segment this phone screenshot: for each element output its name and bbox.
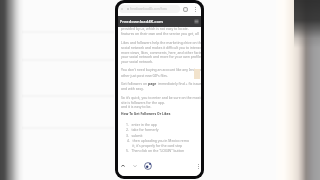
staticText: 4. then uploading you in Mexico remo bbox=[127, 138, 189, 143]
staticText: and it is easy to be. bbox=[121, 104, 152, 109]
staticText: You don't need buying an account like an… bbox=[121, 67, 201, 72]
button[interactable]: Freedownload4K.com bbox=[120, 16, 199, 27]
staticText: Freedownload4K.com bbox=[120, 19, 163, 24]
staticText: features on their own and the service yo… bbox=[121, 31, 199, 36]
staticText: 3. submit bbox=[126, 133, 143, 138]
staticText: provided by us, which is not easy to loc… bbox=[121, 26, 189, 31]
staticText: immediately find + fix issues bbox=[157, 81, 201, 86]
button[interactable]: Menu bbox=[194, 19, 199, 24]
button[interactable]: Back bbox=[120, 163, 126, 169]
button[interactable]: freedownload4k.com/how bbox=[119, 5, 180, 13]
button[interactable]: Forward bbox=[132, 163, 138, 169]
staticText: your social network. bbox=[121, 59, 154, 64]
staticText: 2. take for formerly bbox=[126, 127, 159, 132]
staticText: site is followers for the app. bbox=[121, 100, 165, 105]
staticText: your social network and more for your ow… bbox=[121, 54, 201, 59]
staticText: page bbox=[148, 81, 157, 86]
staticText: freedownload4k.com/how bbox=[130, 7, 167, 11]
button[interactable]: Account bbox=[144, 162, 152, 170]
staticText: more views, likes, comments, here, and o… bbox=[121, 50, 201, 55]
staticText: social network and makes it difficult yo… bbox=[121, 45, 201, 50]
button[interactable]: Page menu bbox=[195, 163, 201, 169]
button[interactable]: More options bbox=[193, 7, 198, 12]
staticText: How To Get Followers Or Likes bbox=[121, 111, 171, 115]
staticText: So it's quick, you to enter and be sure … bbox=[121, 95, 201, 100]
button[interactable]: Tabs bbox=[183, 7, 188, 12]
staticText: it, it's properly for the card step bbox=[127, 143, 183, 148]
staticText: Get followers on bbox=[121, 81, 148, 86]
staticText: 5. Then click on the "LOGIN" button bbox=[126, 148, 185, 153]
staticText: Likes and followers help the marketing d… bbox=[121, 40, 201, 45]
staticText: and with easy. bbox=[121, 86, 144, 91]
staticText: 1. enter in the app bbox=[126, 122, 157, 127]
staticText: other just post new GIFs files. bbox=[121, 73, 168, 78]
